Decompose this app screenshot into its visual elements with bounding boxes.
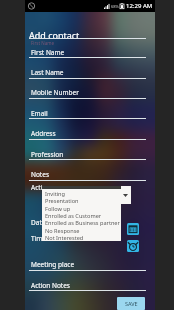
staticText: Date: [31, 218, 46, 227]
button[interactable]: Follow up: [45, 205, 124, 212]
button[interactable]: Enrolled as Customer: [45, 212, 124, 219]
staticText: Follow up: [45, 205, 71, 212]
staticText: SAVE: [125, 300, 138, 307]
staticText: Actions: [31, 183, 54, 192]
staticText: First Name: [31, 48, 65, 57]
staticText: Inviting: [45, 190, 65, 197]
button[interactable]: Not Interested: [45, 234, 124, 241]
staticText: Profession: [31, 150, 64, 159]
staticText: Enrolled as Customer: [45, 212, 102, 219]
button[interactable]: Presentation: [45, 197, 124, 204]
button[interactable]: Pick time: [127, 240, 139, 252]
button[interactable]: Inviting: [45, 190, 124, 197]
staticText: Not Interested: [45, 234, 84, 241]
button[interactable]: Enrolled as Business partner: [45, 219, 124, 226]
staticText: Add contact: [29, 29, 80, 41]
staticText: Mobile Number: [31, 88, 79, 97]
staticText: 12:29 AM: [126, 2, 153, 10]
button[interactable]: [42, 186, 131, 204]
staticText: Meeting place: [31, 260, 75, 269]
staticText: Email: [31, 109, 48, 118]
staticText: Last Name: [31, 68, 64, 77]
button[interactable]: No Response: [45, 227, 124, 234]
button[interactable]: SAVE: [117, 297, 145, 310]
staticText: Notes: [31, 170, 49, 179]
staticText: No Response: [45, 227, 80, 234]
staticText: 68%: [111, 4, 119, 9]
staticText: Action Notes: [31, 281, 70, 290]
staticText: Address: [31, 129, 56, 138]
staticText: Time: [31, 234, 47, 243]
staticText: Presentation: [45, 197, 79, 204]
staticText: Enrolled as Business partner: [45, 219, 120, 226]
staticText: First Name: [31, 40, 54, 46]
button[interactable]: Pick date: [127, 223, 139, 235]
